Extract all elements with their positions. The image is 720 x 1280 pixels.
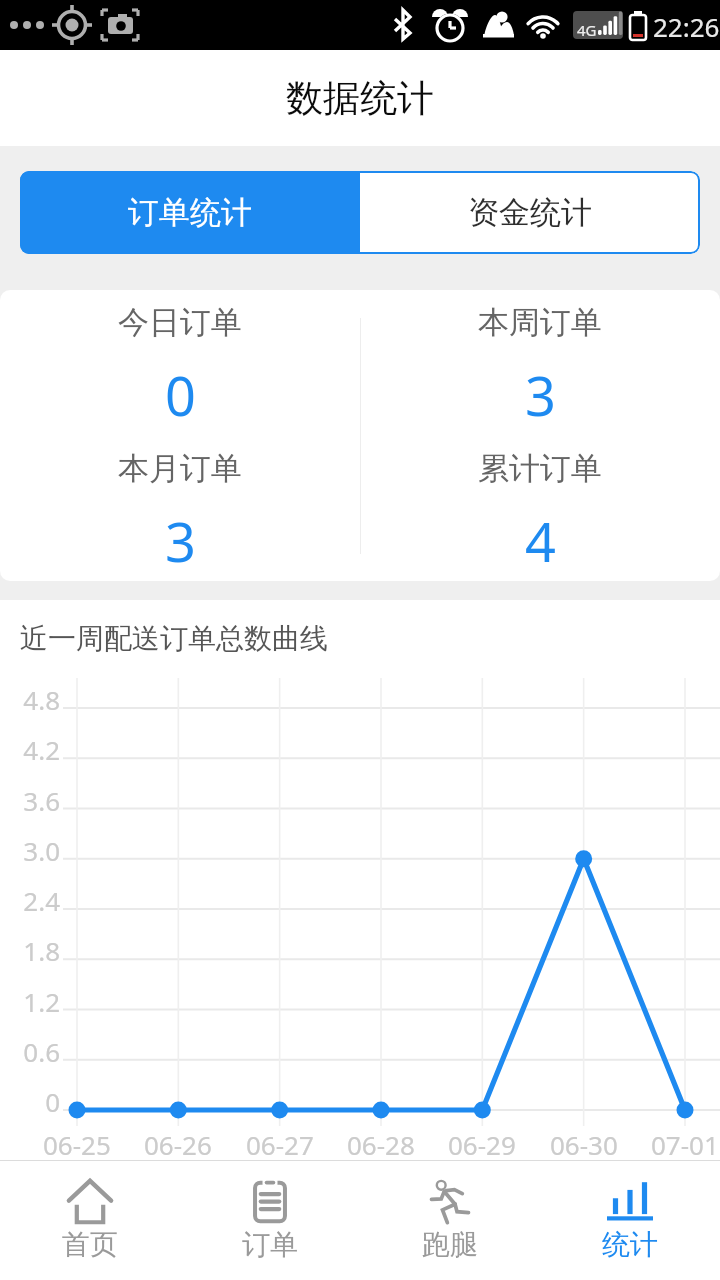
staticText: 累计订单 [478,449,602,488]
staticText: 订单 [242,1227,298,1262]
staticText: 0 [0,1084,60,1119]
other: 近一周配送订单总数曲线图表 [0,668,720,1160]
staticText: 06-25 [43,1127,111,1162]
staticText: 3.0 [0,833,60,868]
staticText: 4.8 [0,682,60,717]
staticText: 首页 [62,1227,118,1262]
staticText: 统计 [602,1227,658,1262]
staticText: 今日订单 [118,303,242,342]
staticText: 0 [165,358,196,432]
staticText: 22:26 [653,9,720,44]
staticText: 1.2 [0,984,60,1019]
button[interactable]: 今日订单 [0,290,360,435]
staticText: 数据统计 [286,75,434,122]
button[interactable]: 首页 [0,1161,180,1280]
staticText: 4.2 [0,732,60,767]
staticText: 3 [165,504,196,578]
button[interactable]: 统计 [540,1161,720,1280]
staticText: 3.6 [0,783,60,818]
button[interactable]: 累计订单 [360,435,720,581]
staticText: 06-26 [144,1127,212,1162]
staticText: 2.4 [0,883,60,918]
staticText: 订单统计 [128,193,252,232]
staticText: 4G [577,20,597,40]
staticText: 本月订单 [118,449,242,488]
staticText: 06-29 [448,1127,516,1162]
button[interactable]: 资金统计 [360,171,700,254]
button[interactable]: 跑腿 [360,1161,540,1280]
staticText: 4 [525,504,556,578]
staticText: 0.6 [0,1034,60,1069]
button[interactable]: 订单 [180,1161,360,1280]
staticText: 资金统计 [468,193,592,232]
staticText: 1.8 [0,933,60,968]
staticText: 近一周配送订单总数曲线 [20,621,328,656]
staticText: 跑腿 [422,1227,478,1262]
staticText: 3 [525,358,556,432]
button[interactable]: 本月订单 [0,435,360,581]
button[interactable]: 订单统计 [20,171,360,254]
staticText: 06-27 [246,1127,314,1162]
staticText: 06-30 [550,1127,618,1162]
staticText: 本周订单 [478,303,602,342]
staticText: 07-01 [651,1127,719,1162]
staticText: 06-28 [347,1127,415,1162]
button[interactable]: 本周订单 [360,290,720,435]
